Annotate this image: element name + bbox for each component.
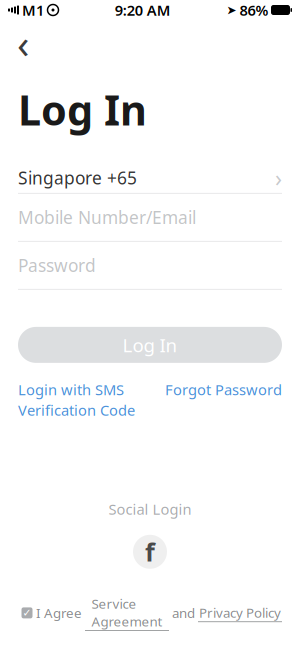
staticText: Singapore +65 bbox=[18, 166, 137, 189]
button[interactable]: Singapore +65 bbox=[0, 163, 300, 194]
button[interactable]: Privacy Policy bbox=[198, 604, 282, 622]
button[interactable]: Service Agreement bbox=[85, 595, 169, 631]
staticText: Mobile Number/Email bbox=[18, 206, 196, 229]
staticText: › bbox=[275, 163, 282, 193]
staticText: M1 bbox=[22, 0, 44, 20]
button[interactable]: Log In bbox=[18, 327, 282, 363]
staticText: Login with SMS bbox=[18, 380, 124, 399]
staticText: Log In bbox=[18, 82, 147, 137]
staticText: Service Agreement bbox=[91, 595, 162, 630]
staticText: Social Login bbox=[108, 499, 191, 519]
button[interactable]: Forgot Password bbox=[165, 380, 282, 399]
staticText: Verification Code bbox=[18, 400, 135, 420]
staticText: I Agree bbox=[36, 604, 85, 622]
button[interactable]: Login with SMS bbox=[18, 380, 135, 420]
staticText: 86% bbox=[239, 0, 268, 20]
staticText: Privacy Policy bbox=[199, 604, 281, 621]
staticText: ➤ bbox=[226, 3, 236, 17]
staticText: Forgot Password bbox=[165, 380, 282, 399]
staticText: f bbox=[145, 535, 155, 569]
button[interactable]: Sign in with Facebook bbox=[133, 535, 167, 569]
staticText: 9:20 AM bbox=[115, 0, 171, 20]
staticText: ‹ bbox=[17, 16, 29, 69]
staticText: ✓ bbox=[22, 607, 31, 619]
staticText: Log In bbox=[122, 332, 177, 357]
button[interactable]: I agree to the terms bbox=[18, 604, 36, 622]
staticText: and bbox=[169, 604, 198, 622]
staticText: Password bbox=[18, 254, 96, 277]
button[interactable]: Back bbox=[6, 26, 40, 60]
